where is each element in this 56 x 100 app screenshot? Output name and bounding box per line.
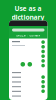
staticText: dictionary — [11, 13, 44, 22]
staticText: Use as a — [14, 4, 41, 13]
staticText: ENGLISH - GERMAN — [16, 34, 40, 37]
